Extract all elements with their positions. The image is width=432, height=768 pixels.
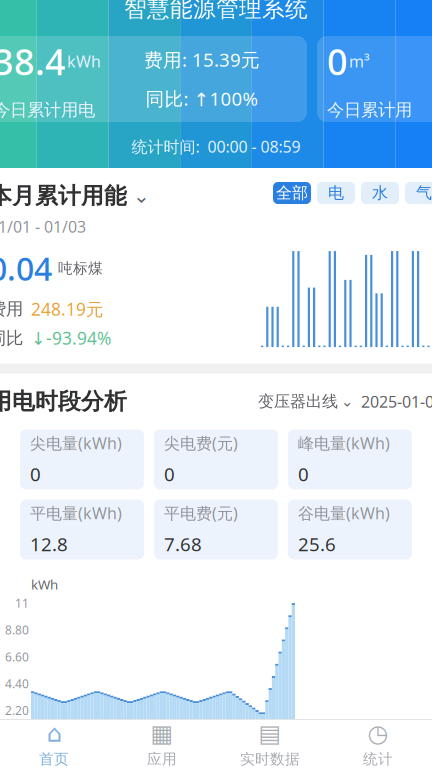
staticText: kWh bbox=[31, 575, 58, 593]
staticText: 2025-01-03 bbox=[361, 391, 432, 412]
staticText: 11:0 bbox=[365, 749, 386, 763]
staticText: 费用 bbox=[0, 298, 23, 320]
staticText: 首页 bbox=[39, 750, 69, 768]
staticText: 尖电量(kWh) bbox=[30, 432, 122, 454]
staticText: ▦ bbox=[150, 720, 173, 747]
staticText: 变压器出线 bbox=[258, 392, 338, 411]
staticText: m³ bbox=[349, 51, 370, 72]
button[interactable]: ▤ bbox=[216, 721, 324, 767]
staticText: ▤ bbox=[258, 720, 281, 747]
staticText: 吨标煤 bbox=[58, 259, 103, 277]
staticText: 7.68 bbox=[164, 532, 202, 556]
staticText: 04:00 bbox=[152, 749, 179, 763]
staticText: 6.60 bbox=[5, 649, 29, 665]
button[interactable]: 本月累计用能 bbox=[0, 182, 150, 210]
staticText: 01/01 - 01/03 bbox=[0, 216, 86, 237]
staticText: ↓-93.94% bbox=[31, 327, 111, 350]
staticText: ⌄ bbox=[341, 393, 353, 410]
staticText: 谷电量(kWh) bbox=[298, 502, 390, 524]
button[interactable]: 气 bbox=[405, 182, 432, 204]
staticText: 应用 bbox=[147, 750, 177, 768]
staticText: 4.40 bbox=[5, 676, 29, 691]
staticText: 08:00 bbox=[272, 749, 299, 763]
staticText: 尖电费(元) bbox=[164, 432, 238, 454]
staticText: 平电量(kWh) bbox=[30, 502, 122, 524]
staticText: 11 bbox=[15, 595, 29, 611]
staticText: 248.19元 bbox=[31, 298, 103, 321]
staticText: 统计 bbox=[363, 750, 393, 768]
staticText: 峰电量(kWh) bbox=[298, 432, 390, 454]
staticText: kWh bbox=[67, 51, 101, 72]
staticText: ⌂ bbox=[46, 720, 61, 747]
staticText: 费用: 15.39元 bbox=[144, 47, 260, 72]
staticText: 今日累计用电 bbox=[0, 99, 95, 121]
button[interactable]: ▦ bbox=[108, 721, 216, 767]
button[interactable]: 电 bbox=[317, 182, 355, 204]
staticText: 智慧能源管理系统 bbox=[124, 0, 308, 23]
staticText: 统计时间: 00:00 - 08:59 bbox=[131, 136, 300, 157]
staticText: 本月累计用能 bbox=[0, 182, 127, 210]
staticText: ⌄ bbox=[133, 185, 150, 207]
staticText: 同比: ↑100% bbox=[145, 86, 258, 111]
staticText: 03:00 bbox=[122, 749, 149, 763]
staticText: 8.80 bbox=[5, 622, 29, 638]
staticText: 0 bbox=[164, 462, 175, 486]
staticText: 0.04 bbox=[0, 247, 52, 290]
button[interactable]: 全部 bbox=[273, 182, 311, 204]
staticText: 同比 bbox=[0, 327, 23, 349]
staticText: 实时数据 bbox=[240, 750, 300, 768]
staticText: 平电费(元) bbox=[164, 502, 238, 524]
staticText: 01:00 bbox=[62, 749, 89, 763]
button[interactable]: 水 bbox=[361, 182, 399, 204]
staticText: 25.6 bbox=[298, 532, 336, 556]
staticText: 0 bbox=[327, 37, 348, 85]
staticText: 全部 bbox=[276, 183, 308, 203]
staticText: 38.4 bbox=[0, 37, 66, 85]
button[interactable]: 变压器出线 bbox=[258, 392, 353, 411]
button[interactable]: ⌂ bbox=[0, 721, 108, 767]
staticText: ◷ bbox=[367, 720, 388, 747]
staticText: 2.20 bbox=[5, 702, 29, 718]
staticText: 气 bbox=[416, 183, 432, 203]
staticText: 00:00 bbox=[32, 749, 59, 763]
staticText: 12.8 bbox=[30, 532, 68, 556]
staticText: 电 bbox=[328, 183, 344, 203]
staticText: 0 bbox=[30, 462, 41, 486]
staticText: 今日累计用 bbox=[327, 99, 412, 121]
staticText: 水 bbox=[372, 183, 388, 203]
button[interactable]: ◷ bbox=[324, 721, 432, 767]
staticText: 0 bbox=[298, 462, 309, 486]
staticText: 用电时段分析 bbox=[0, 388, 127, 415]
staticText: 07:00 bbox=[242, 749, 269, 763]
